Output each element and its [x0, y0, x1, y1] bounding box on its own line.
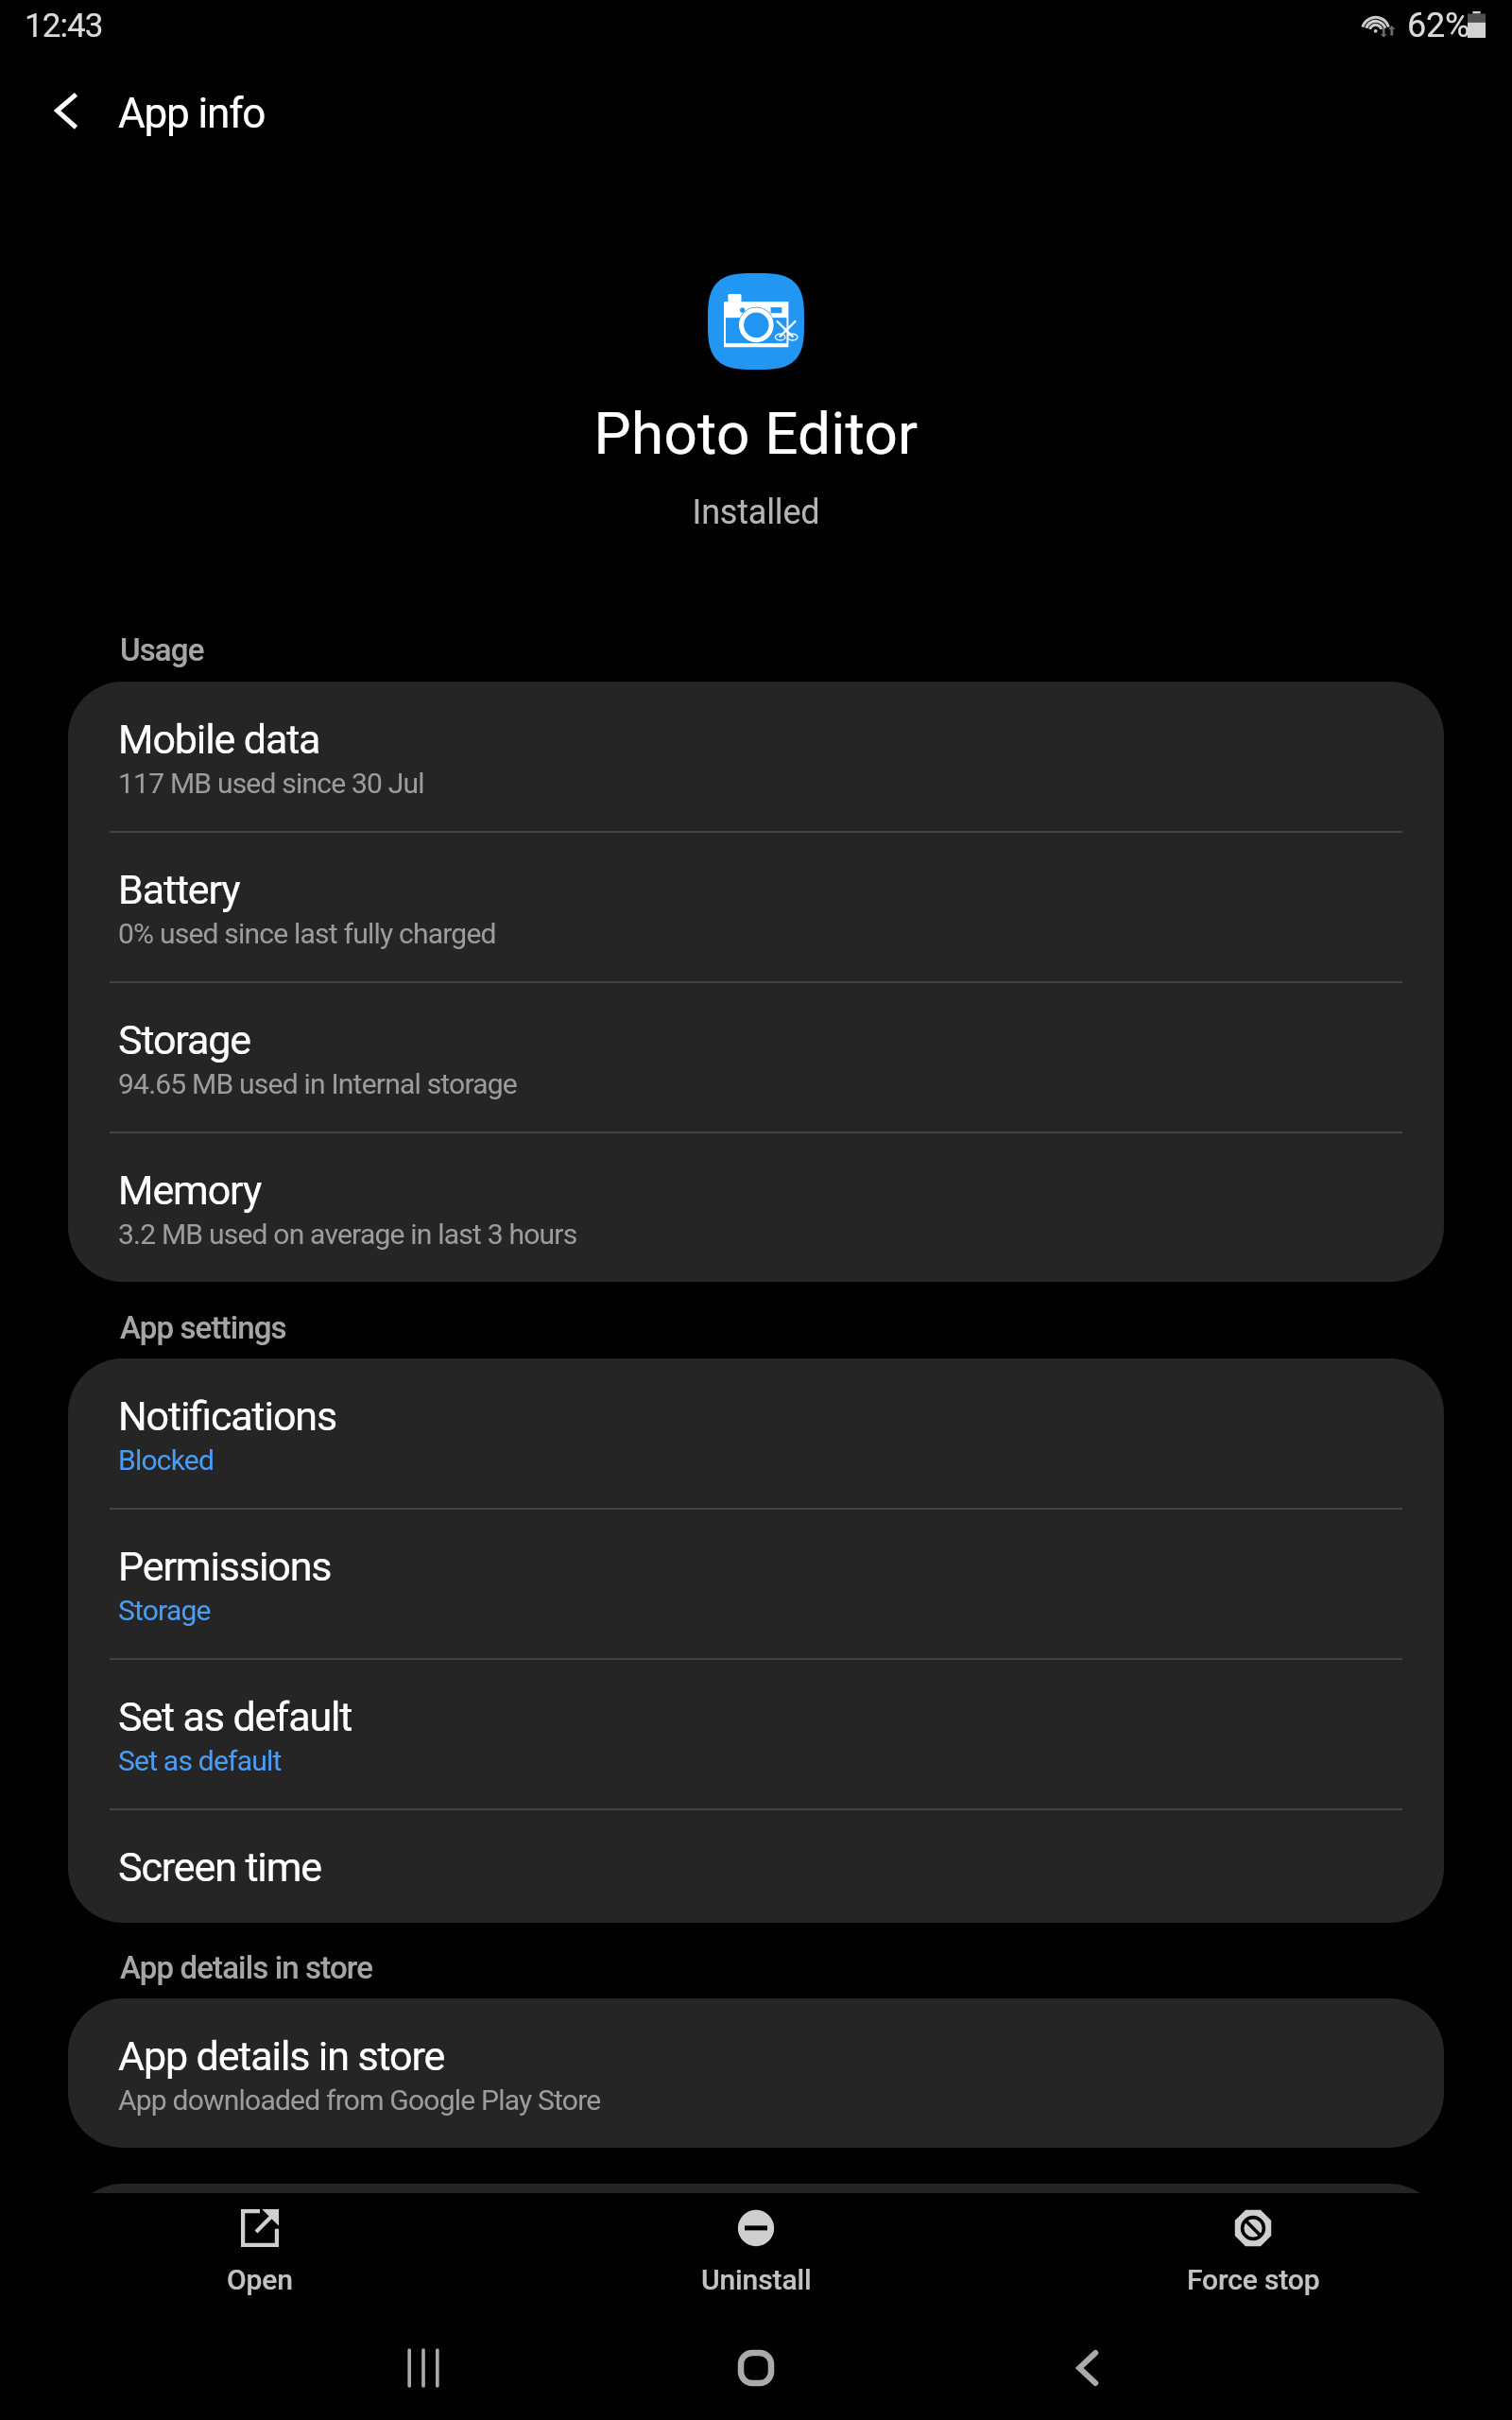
button[interactable]: Memory	[68, 1132, 1444, 1282]
staticText: Blocked	[118, 1443, 215, 1477]
button[interactable]: Force stop	[1064, 2195, 1442, 2308]
button[interactable]: Permissions	[68, 1509, 1444, 1659]
staticText: App details in store	[120, 1949, 373, 1986]
staticText: Permissions	[118, 1543, 332, 1590]
button[interactable]: Mobile data	[68, 682, 1444, 832]
staticText: Memory	[118, 1167, 262, 1214]
staticText: Usage	[120, 631, 204, 668]
staticText: Notifications	[118, 1392, 337, 1440]
staticText: Storage	[118, 1594, 211, 1627]
button[interactable]: Battery	[68, 832, 1444, 982]
staticText: App info	[118, 89, 266, 138]
staticText: Storage	[118, 1016, 250, 1063]
button[interactable]: Recents	[348, 2316, 499, 2420]
staticText: App details in store	[118, 2032, 445, 2080]
staticText: 62%	[1407, 6, 1470, 45]
staticText: 94.65 MB used in Internal storage	[118, 1067, 517, 1100]
button[interactable]: Back	[1010, 2316, 1161, 2420]
staticText: 3.2 MB used on average in last 3 hours	[118, 1218, 577, 1251]
staticText: 12:43	[25, 7, 103, 45]
staticText: Uninstall	[701, 2263, 812, 2296]
staticText: 0% used since last fully charged	[118, 917, 496, 950]
button[interactable]: Set as default	[68, 1659, 1444, 1809]
staticText: Battery	[118, 866, 240, 913]
button[interactable]: Navigate up	[21, 64, 115, 157]
button[interactable]: Storage	[68, 982, 1444, 1132]
staticText: App settings	[120, 1309, 286, 1346]
button[interactable]: App details in store	[68, 1998, 1444, 2148]
staticText: Screen time	[118, 1843, 321, 1891]
staticText: Installed	[0, 493, 1512, 532]
staticText: Mobile data	[118, 716, 320, 763]
button[interactable]: Open	[71, 2195, 449, 2308]
staticText: App downloaded from Google Play Store	[118, 2083, 601, 2117]
button[interactable]: Notifications	[68, 1358, 1444, 1509]
staticText: Photo Editor	[0, 399, 1512, 468]
button[interactable]: Screen time	[68, 1809, 1444, 1923]
staticText: Set as default	[118, 1744, 282, 1777]
button[interactable]: Uninstall	[567, 2195, 945, 2308]
staticText: Open	[227, 2263, 293, 2296]
staticText: 117 MB used since 30 Jul	[118, 767, 424, 800]
staticText: Set as default	[118, 1693, 352, 1740]
button[interactable]: Home	[680, 2316, 832, 2420]
staticText: Force stop	[1187, 2263, 1320, 2296]
